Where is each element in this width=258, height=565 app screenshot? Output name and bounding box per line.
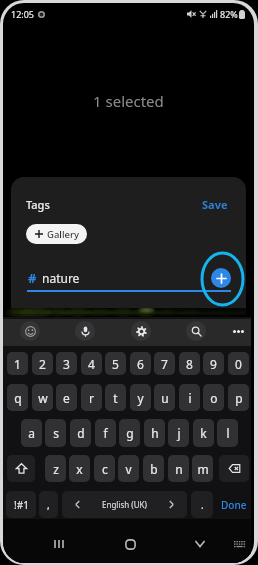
staticText: j (177, 425, 181, 441)
button[interactable]: 5 (105, 352, 126, 375)
button[interactable]: English (UK) (62, 491, 187, 518)
staticText: , (47, 498, 50, 512)
button[interactable]: !#1 (6, 491, 36, 518)
staticText: 5 (112, 356, 119, 372)
staticText: 8 (186, 356, 193, 372)
button[interactable]: , (39, 491, 58, 518)
button[interactable]: Emoji (20, 321, 40, 341)
button[interactable]: l (217, 419, 238, 447)
staticText: Save (202, 197, 228, 212)
staticText: y (137, 390, 144, 406)
staticText: x (76, 461, 83, 477)
staticText: e (63, 390, 70, 406)
button[interactable]: Settings (131, 321, 151, 341)
staticText: s (53, 425, 59, 441)
staticText: 1 selected (93, 91, 164, 111)
button[interactable]: s (45, 419, 66, 447)
staticText: Tags (26, 197, 50, 212)
staticText: English (UK) (102, 499, 147, 510)
button[interactable]: Voice input (75, 321, 95, 341)
button[interactable]: q (7, 384, 28, 411)
button[interactable]: p (228, 384, 249, 411)
button[interactable]: Switch keyboard (229, 533, 251, 555)
staticText: 3 (63, 356, 70, 372)
staticText: g (126, 425, 134, 441)
button[interactable]: m (192, 455, 213, 482)
staticText: 2 (39, 356, 46, 372)
button[interactable]: Add tag (211, 268, 231, 288)
staticText: f (103, 425, 108, 441)
staticText: m (197, 461, 209, 477)
staticText: 82% (220, 8, 238, 20)
button[interactable]: 1 (7, 352, 28, 375)
button[interactable]: i (179, 384, 200, 411)
button[interactable]: f (95, 419, 116, 447)
button[interactable]: Hide keyboard (189, 533, 211, 555)
button[interactable]: 6 (130, 352, 151, 375)
button[interactable]: 0 (228, 352, 249, 375)
button[interactable]: Gallery (26, 224, 87, 244)
button[interactable]: d (70, 419, 91, 447)
staticText: Done (221, 498, 247, 512)
staticText: # (28, 269, 37, 287)
button[interactable]: r (81, 384, 102, 411)
button[interactable]: o (203, 384, 224, 411)
button[interactable]: 2 (32, 352, 53, 375)
staticText: w (38, 390, 48, 406)
staticText: t (113, 390, 118, 406)
button[interactable]: u (154, 384, 175, 411)
button[interactable]: v (118, 455, 139, 482)
button[interactable]: Shift (7, 455, 35, 482)
staticText: r (89, 390, 94, 406)
button[interactable]: Recents (48, 533, 70, 555)
button[interactable]: 7 (154, 352, 175, 375)
button[interactable]: More options (228, 321, 249, 342)
button[interactable]: Done (217, 491, 250, 518)
staticText: n (175, 461, 183, 477)
button[interactable]: z (45, 455, 66, 482)
button[interactable]: t (105, 384, 126, 411)
staticText: z (53, 461, 59, 477)
staticText: p (235, 390, 243, 406)
staticText: h (151, 425, 159, 441)
button[interactable]: 3 (56, 352, 77, 375)
staticText: c (102, 461, 108, 477)
staticText: . (201, 498, 204, 512)
button[interactable]: 4 (81, 352, 102, 375)
button[interactable]: Home (119, 533, 141, 555)
button[interactable]: x (69, 455, 90, 482)
staticText: 0 (235, 356, 242, 372)
staticText: b (150, 461, 158, 477)
button[interactable]: k (193, 419, 214, 447)
button[interactable]: j (168, 419, 189, 447)
staticText: 6 (137, 356, 144, 372)
staticText: i (188, 390, 192, 406)
button[interactable]: g (119, 419, 140, 447)
button[interactable]: c (94, 455, 115, 482)
staticText: u (161, 390, 169, 406)
staticText: !#1 (14, 498, 29, 512)
button[interactable]: h (144, 419, 165, 447)
button[interactable]: y (130, 384, 151, 411)
button[interactable]: w (32, 384, 53, 411)
button[interactable]: Search (186, 321, 206, 341)
staticText: 4 (88, 356, 95, 372)
button[interactable]: n (168, 455, 189, 482)
staticText: nature (42, 270, 80, 286)
button[interactable]: b (143, 455, 164, 482)
button[interactable]: 9 (203, 352, 224, 375)
staticText: o (210, 390, 218, 406)
staticText: q (14, 390, 22, 406)
staticText: 12:05 (11, 8, 35, 20)
staticText: 1 (14, 356, 21, 372)
staticText: Gallery (47, 228, 79, 241)
button[interactable]: a (21, 419, 42, 447)
staticText: v (125, 461, 132, 477)
staticText: 7 (161, 356, 168, 372)
staticText: l (226, 425, 230, 441)
button[interactable]: . (191, 491, 213, 518)
button[interactable]: Save (202, 197, 228, 212)
button[interactable]: Backspace (219, 455, 249, 482)
button[interactable]: e (56, 384, 77, 411)
button[interactable]: 8 (179, 352, 200, 375)
